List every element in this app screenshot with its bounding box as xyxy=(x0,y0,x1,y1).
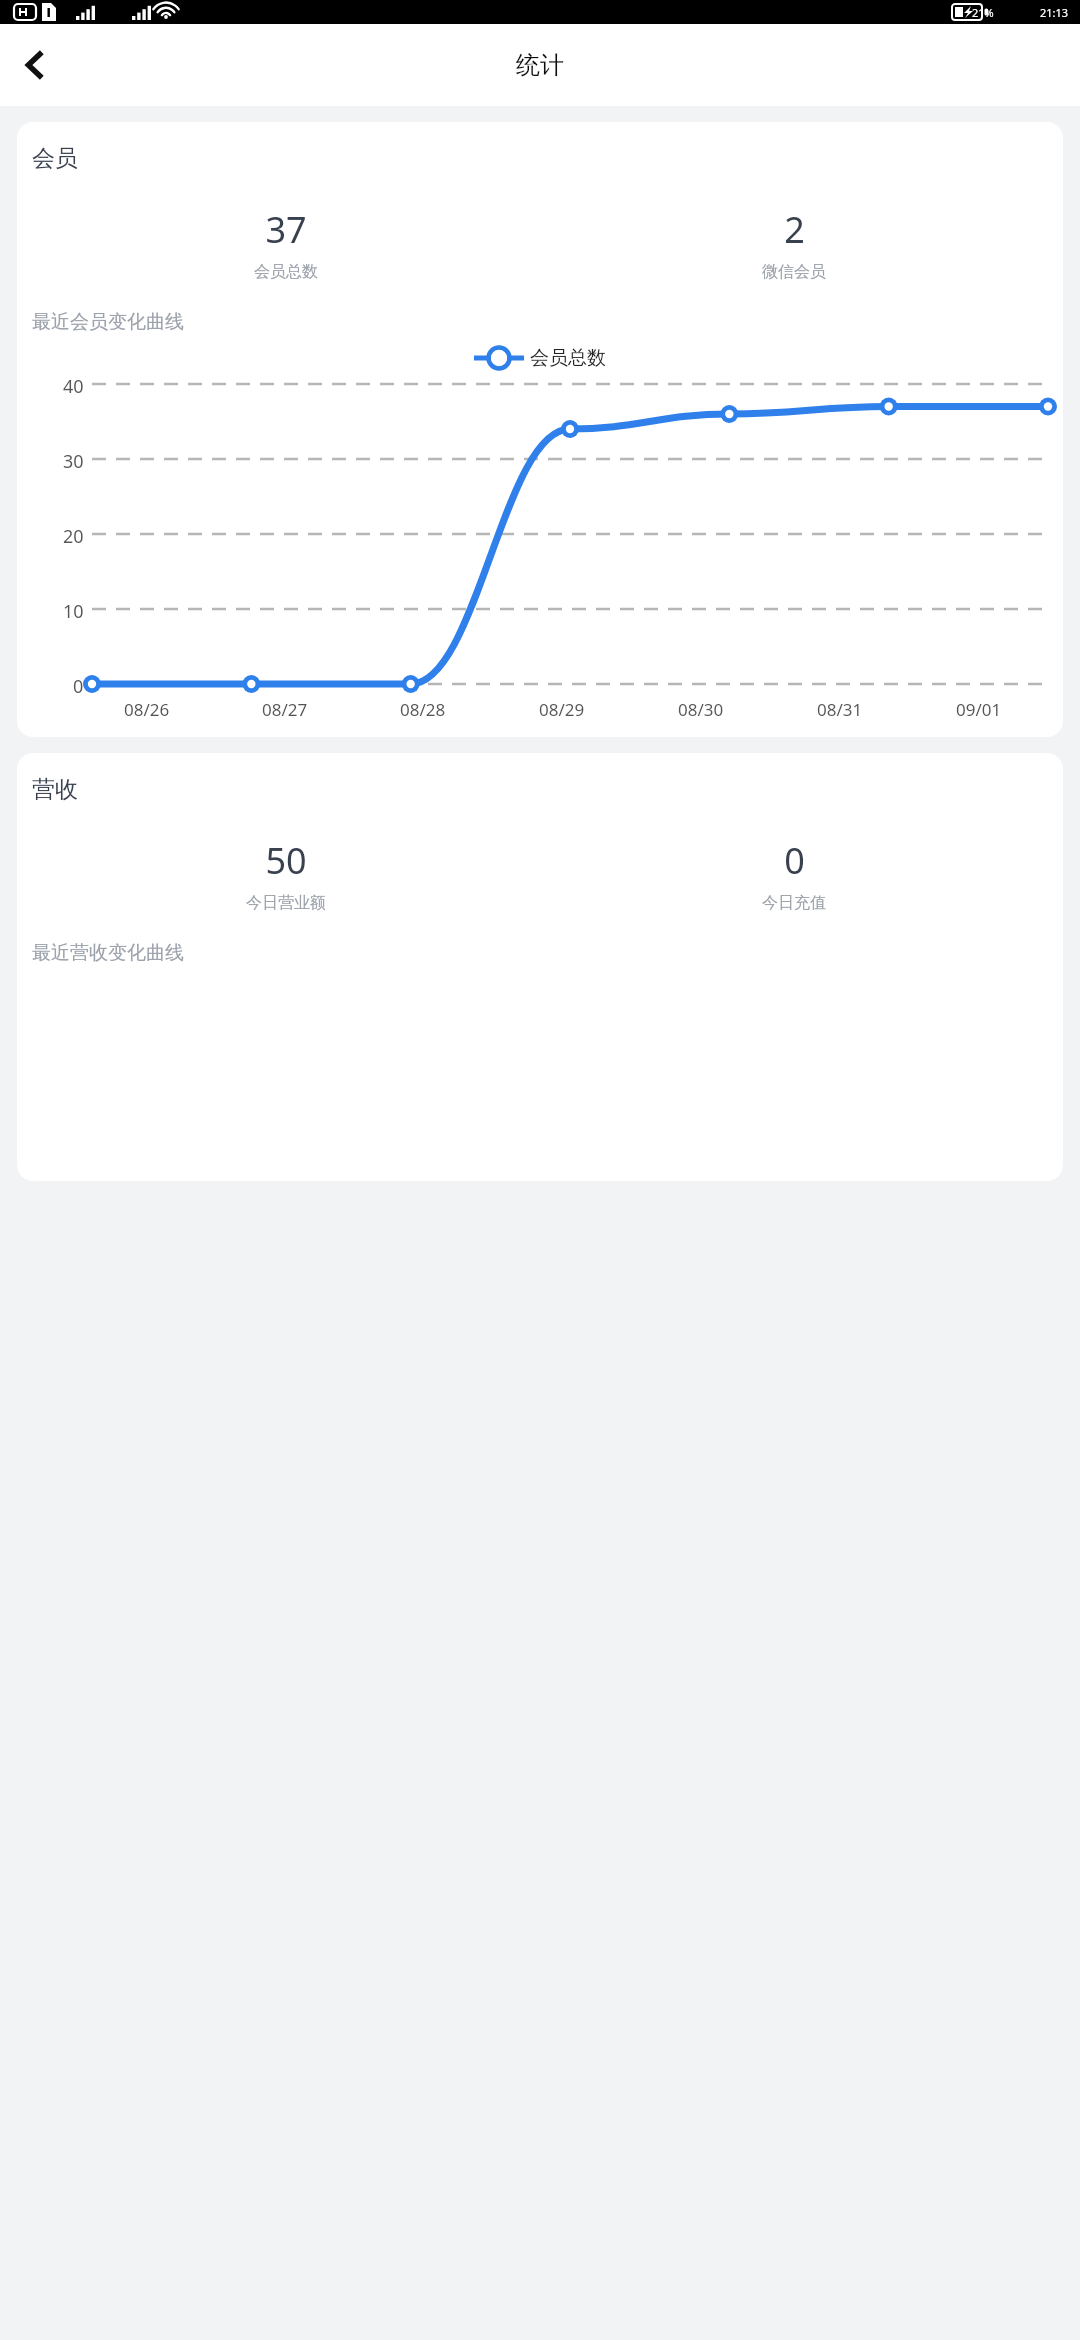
staticText: 最近会员变化曲线 xyxy=(32,310,184,334)
staticText: 08/26 xyxy=(124,698,170,721)
staticText: 统计 xyxy=(516,50,564,80)
button[interactable]: 营收 xyxy=(17,753,1063,1181)
staticText: 微信会员 xyxy=(762,262,826,282)
staticText: 今日营业额 xyxy=(246,893,326,913)
staticText: 08/27 xyxy=(262,698,308,721)
button[interactable]: 会员 xyxy=(17,122,1063,737)
staticText: 08/31 xyxy=(817,698,863,721)
staticText: 21:13 xyxy=(1040,5,1069,20)
staticText: 21% xyxy=(972,5,994,20)
staticText: 50 xyxy=(265,836,307,885)
staticText: 会员 xyxy=(32,144,78,173)
staticText: 最近营收变化曲线 xyxy=(32,941,184,965)
staticText: 40 xyxy=(63,374,84,394)
staticText: 0 xyxy=(784,836,805,885)
staticText: 08/30 xyxy=(678,698,724,721)
button[interactable]: Back xyxy=(6,36,64,94)
staticText: 2 xyxy=(784,205,805,254)
staticText: 09/01 xyxy=(956,698,1002,721)
staticText: 37 xyxy=(265,205,307,254)
staticText: 08/29 xyxy=(539,698,585,721)
staticText: 营收 xyxy=(32,775,78,804)
staticText: 今日充值 xyxy=(762,893,826,913)
staticText: 会员总数 xyxy=(254,262,318,282)
staticText: 30 xyxy=(63,449,84,469)
staticText: 会员总数 xyxy=(530,346,606,370)
staticText: 0 xyxy=(73,674,84,694)
staticText: 20 xyxy=(63,524,84,544)
staticText: 08/28 xyxy=(400,698,446,721)
staticText: 10 xyxy=(63,599,84,619)
